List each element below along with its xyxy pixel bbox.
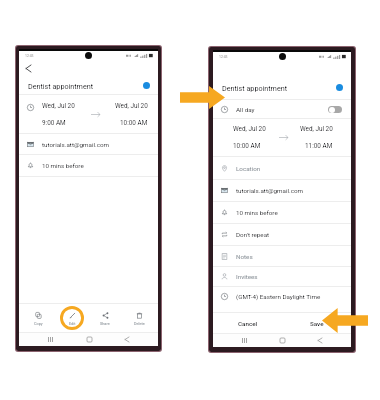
staticText: Don't repeat — [236, 231, 270, 238]
staticText: Save — [310, 320, 324, 327]
staticText: Dentist appointment — [28, 82, 94, 90]
staticText: Dentist appointment — [222, 84, 288, 92]
button[interactable]: Invitees — [213, 267, 351, 286]
staticText: Wed, Jul 20 — [300, 125, 333, 133]
staticText: Delete — [134, 321, 145, 325]
button[interactable]: Wed, Jul 20 — [19, 95, 158, 133]
button[interactable]: Copy — [24, 305, 52, 331]
button[interactable]: Recent apps — [41, 333, 59, 346]
staticText: Location — [236, 165, 261, 172]
button[interactable]: Recent apps — [235, 334, 253, 347]
button[interactable]: Dentist appointment — [19, 77, 158, 94]
button[interactable]: tutorials.att@gmail.com — [213, 180, 351, 201]
button[interactable]: Back — [118, 333, 136, 346]
button[interactable]: Save — [282, 313, 351, 333]
staticText: tutorials.att@gmail.com — [42, 141, 109, 148]
staticText: 10 mins before — [42, 162, 84, 169]
button[interactable]: Location — [213, 157, 351, 179]
button[interactable]: Back — [19, 60, 158, 77]
button[interactable]: (GMT-4) Eastern Daylight Time — [213, 287, 351, 306]
button[interactable]: Share — [91, 305, 119, 331]
button[interactable]: Delete — [125, 305, 153, 331]
staticText: Invitees — [236, 273, 258, 280]
button[interactable]: 10 mins before — [213, 202, 351, 223]
staticText: 12:45 — [25, 54, 34, 58]
button[interactable]: Don't repeat — [213, 224, 351, 245]
button[interactable]: Notes — [213, 246, 351, 266]
button[interactable]: Home — [273, 334, 291, 347]
staticText: Notes — [236, 253, 253, 260]
button[interactable]: tutorials.att@gmail.com — [19, 134, 158, 154]
staticText: tutorials.att@gmail.com — [236, 187, 303, 194]
staticText: Wed, Jul 20 — [233, 125, 266, 133]
staticText: (GMT-4) Eastern Daylight Time — [236, 293, 321, 300]
button[interactable]: Edit — [58, 305, 86, 331]
button[interactable]: Cancel — [213, 313, 282, 333]
staticText: 10 mins before — [236, 209, 278, 216]
button[interactable]: Wed, Jul 20 — [213, 119, 351, 156]
button[interactable]: Home — [80, 333, 98, 346]
button[interactable]: Dentist appointment — [213, 76, 351, 99]
staticText: 9:00 AM — [42, 119, 66, 127]
button[interactable]: 10 mins before — [19, 155, 158, 176]
staticText: All day — [236, 106, 255, 113]
staticText: Copy — [34, 321, 43, 325]
button[interactable]: Back — [311, 334, 329, 347]
staticText: Edit — [69, 321, 76, 325]
staticText: 11:00 AM — [305, 142, 333, 150]
staticText: 10:00 AM — [120, 119, 148, 127]
button[interactable]: All day — [213, 100, 351, 118]
staticText: Share — [100, 321, 110, 325]
staticText: 12:45 — [219, 55, 228, 59]
staticText: Wed, Jul 20 — [115, 102, 148, 110]
staticText: 10:00 AM — [233, 142, 261, 150]
staticText: Cancel — [238, 320, 258, 327]
staticText: Wed, Jul 20 — [42, 102, 75, 110]
